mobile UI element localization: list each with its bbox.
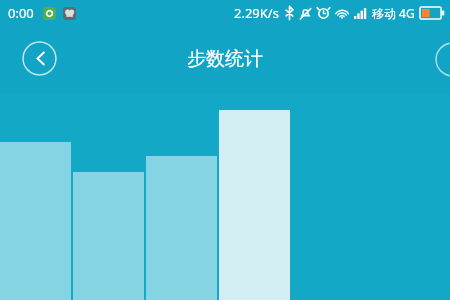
button[interactable]: Back <box>22 41 57 76</box>
staticText: 2.29K/s <box>234 4 279 22</box>
button[interactable]: More <box>435 42 450 77</box>
staticText: 移动 4G <box>372 5 415 21</box>
staticText: 步数统计 <box>187 47 263 71</box>
staticText: 0:00 <box>8 4 34 22</box>
